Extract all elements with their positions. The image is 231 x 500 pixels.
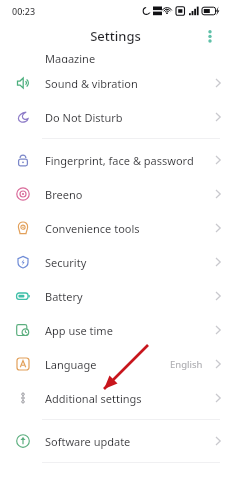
button[interactable]: Do Not Disturb (0, 100, 231, 134)
staticText: Settings (90, 27, 141, 45)
button[interactable]: Software update (0, 424, 231, 458)
staticText: English (170, 358, 203, 371)
staticText: Do Not Disturb (45, 110, 211, 125)
staticText: 00:23 (12, 5, 36, 17)
button[interactable]: More options (199, 25, 221, 47)
button[interactable]: Fingerprint, face & password (0, 143, 231, 177)
button[interactable]: Magazine (0, 54, 231, 66)
button[interactable]: Sound & vibration (0, 66, 231, 100)
button[interactable]: Convenience tools (0, 211, 231, 245)
staticText: Convenience tools (45, 221, 211, 236)
staticText: Sound & vibration (45, 76, 211, 91)
button[interactable]: Language (0, 347, 231, 381)
staticText: Magazine (45, 51, 96, 63)
staticText: Software update (45, 434, 211, 449)
staticText: App use time (45, 323, 211, 338)
button[interactable]: App use time (0, 313, 231, 347)
staticText: Language (45, 357, 170, 372)
button[interactable]: Battery (0, 279, 231, 313)
staticText: Fingerprint, face & password (45, 153, 211, 168)
staticText: Battery (45, 289, 211, 304)
staticText: Breeno (45, 187, 211, 202)
button[interactable]: Breeno (0, 177, 231, 211)
staticText: Additional settings (45, 391, 211, 406)
button[interactable]: Security (0, 245, 231, 279)
button[interactable]: Additional settings (0, 381, 231, 415)
staticText: Security (45, 255, 211, 270)
